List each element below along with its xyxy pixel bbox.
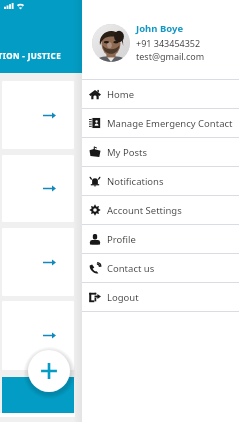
button[interactable]: Profile [82, 225, 239, 253]
staticText: My Posts [107, 146, 147, 159]
button[interactable] [2, 228, 74, 296]
staticText: Account Settings [107, 204, 182, 217]
staticText: Manage Emergency Contact [107, 117, 233, 130]
staticText: ASSOCIATION - JUSTICE [0, 50, 62, 61]
button[interactable] [2, 155, 74, 222]
button[interactable]: Notifications [82, 167, 239, 195]
button[interactable]: My Posts [82, 138, 239, 166]
staticText: Notifications [107, 175, 164, 188]
button[interactable] [2, 301, 74, 370]
button[interactable]: Manage Emergency Contact [82, 109, 239, 137]
staticText: Home [107, 88, 135, 101]
button[interactable]: Account Settings [82, 196, 239, 224]
staticText: Logout [107, 291, 139, 304]
staticText: +91 343454352 [136, 37, 201, 49]
button[interactable]: Contact us [82, 254, 239, 282]
staticText: test@gmail.com [136, 50, 205, 62]
button[interactable]: Logout [82, 283, 239, 311]
staticText: Profile [107, 233, 136, 246]
button[interactable] [2, 81, 74, 149]
staticText: Contact us [107, 262, 155, 275]
button[interactable]: Home [82, 80, 239, 108]
button[interactable]: Add [28, 350, 70, 392]
staticText: John Boye [136, 22, 184, 35]
